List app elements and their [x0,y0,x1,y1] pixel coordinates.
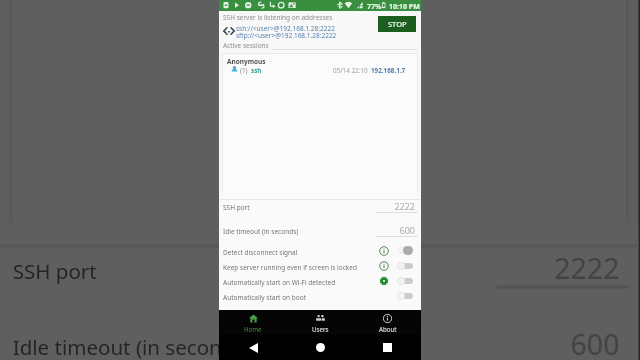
staticText: Idle timeout (in seconds) [13,333,253,360]
button[interactable]: sftp://<user>@192.168.1.28:2222 [236,31,337,40]
button[interactable]: Anonymous [9,0,629,225]
button[interactable]: Idle timeout (in seconds) [0,311,638,360]
button[interactable]: Home [287,335,354,360]
button[interactable]: ssh://<user>@192.168.1.28:2222 [236,24,335,33]
button[interactable]: Anonymous [222,53,418,193]
button[interactable]: About [354,310,421,335]
staticText: Automatically start on Wi-Fi detected [223,278,336,287]
staticText: 600 [219,224,415,236]
staticText: Idle timeout (in seconds) [223,227,299,236]
button[interactable]: Detect disconnect signal [219,243,421,258]
staticText: Keep server running even if screen is lo… [223,263,357,272]
staticText: 10:10 PM [389,2,420,12]
staticText: Active sessions [223,41,269,50]
staticText: About [379,325,397,333]
button[interactable]: Users [287,310,354,335]
button[interactable]: SSH port [0,235,638,298]
staticText: SSH port [223,203,250,212]
staticText: Home [244,325,262,333]
staticText: Users [312,325,329,333]
staticText: 2222 [0,247,619,285]
button[interactable]: SSH port [219,196,421,216]
staticText: 05/14 22:10 [333,66,368,75]
button[interactable]: STOP [378,16,416,32]
button[interactable]: Keep server running even if screen is lo… [219,258,421,273]
button[interactable]: Home [219,310,287,335]
button[interactable]: Back [219,335,287,360]
staticText: STOP [388,19,407,29]
staticText: 2222 [219,200,415,212]
staticText: Automatically start on boot [223,293,306,302]
button[interactable]: Recent apps [354,335,421,360]
staticText: Detect disconnect signal [223,248,298,257]
button[interactable]: Automatically start on Wi-Fi detected [219,273,421,288]
staticText: 192.168.1.7 [371,66,406,75]
button[interactable]: Idle timeout (in seconds) [219,220,421,240]
staticText: 77% [367,2,382,12]
staticText: SSH port [13,257,98,285]
staticText: 600 [0,323,619,360]
staticText: SSH server is listening on addresses [223,13,333,22]
button[interactable]: Automatically start on boot [219,288,421,303]
staticText: (1) [240,66,248,75]
staticText: Anonymous [227,57,266,66]
staticText: ssh [251,66,262,75]
